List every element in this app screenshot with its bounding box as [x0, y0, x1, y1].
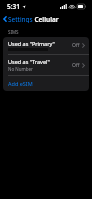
- staticText: Off: [72, 42, 80, 49]
- staticText: Used as "Travel": [8, 58, 50, 65]
- button[interactable]: Add eSIM: [3, 76, 89, 91]
- staticText: Used as "Primary": [8, 40, 55, 47]
- staticText: SIMS: [8, 29, 19, 35]
- staticText: Cellular: [34, 15, 59, 24]
- staticText: Add eSIM: [8, 80, 33, 87]
- staticText: 5:31: [7, 2, 20, 11]
- staticText: Off: [72, 62, 80, 69]
- staticText: Settings: [8, 15, 33, 23]
- button[interactable]: Used as "Travel": [3, 55, 89, 75]
- button[interactable]: Used as "Primary": [3, 37, 89, 54]
- other: Open: [82, 63, 85, 68]
- staticText: No Number: [8, 66, 33, 72]
- button[interactable]: Settings: [0, 13, 37, 25]
- other: Open: [82, 43, 85, 48]
